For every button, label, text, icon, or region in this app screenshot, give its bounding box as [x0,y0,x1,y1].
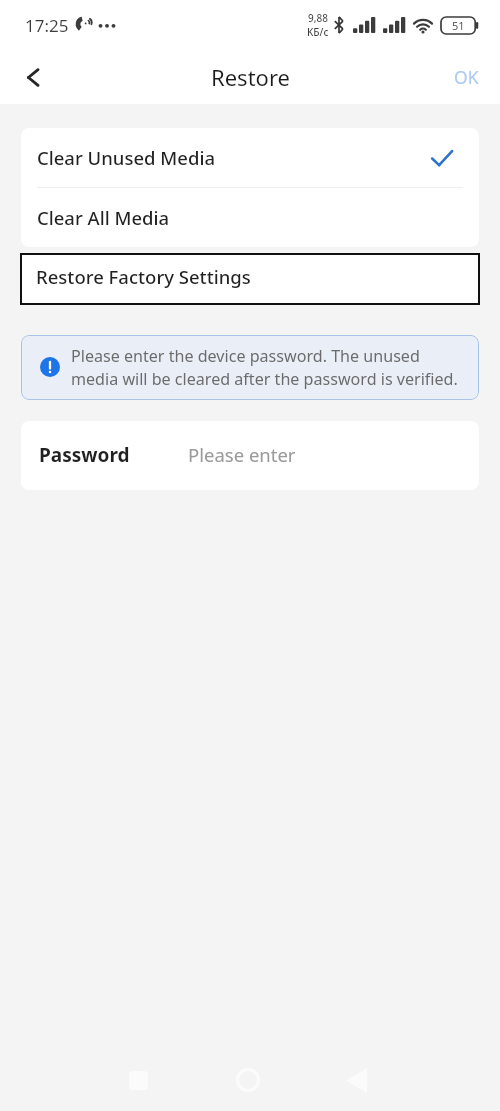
staticText: Restore [211,62,290,92]
button[interactable]: Clear All Media [21,188,479,247]
staticText: Clear Unused Media [37,145,215,170]
button[interactable]: Restore Factory Settings [20,253,480,305]
staticText: OK [454,65,479,89]
staticText: Clear All Media [37,205,170,230]
button[interactable]: OK [446,57,487,97]
staticText: 17:25 [25,14,69,37]
button[interactable]: Clear Unused Media [21,128,479,187]
button[interactable]: Back [9,53,57,101]
staticText: Please enter the device password. The un… [71,345,465,390]
staticText: Please enter [188,442,296,467]
staticText: KБ/c [307,25,329,39]
staticText: Restore Factory Settings [36,264,251,289]
button[interactable]: Password [21,421,479,490]
staticText: Password [39,442,130,468]
staticText: 51 [452,18,465,33]
staticText: 9,88 [308,11,328,25]
